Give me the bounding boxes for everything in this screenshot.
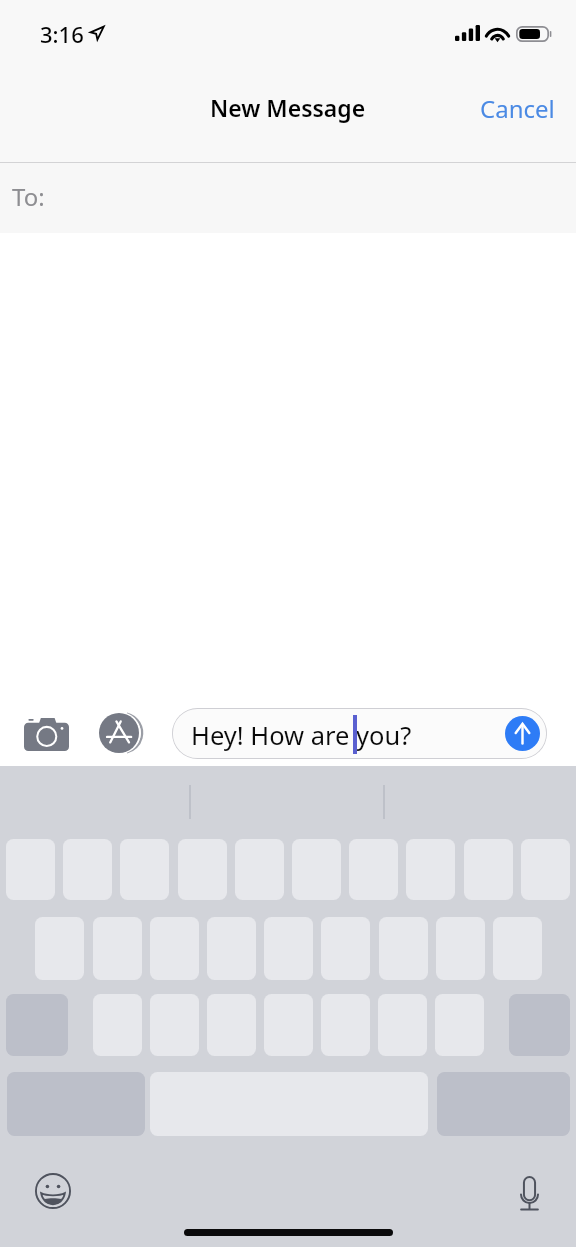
staticText: Hey! How are you? (191, 718, 412, 753)
button[interactable]: Camera (18, 711, 74, 755)
button[interactable]: Hey! How are you? (172, 708, 547, 759)
button[interactable]: Dictation (508, 1168, 550, 1210)
staticText: 3:16 (40, 19, 84, 49)
button[interactable]: To: (0, 163, 576, 233)
staticText: Cancel (480, 92, 555, 125)
staticText: New Message (210, 92, 366, 123)
button[interactable]: Send (505, 716, 540, 751)
button[interactable]: App Store (95, 709, 143, 757)
button[interactable]: Cancel (459, 83, 576, 134)
button[interactable]: Emoji (31, 1169, 76, 1214)
staticText: To: (12, 180, 45, 213)
